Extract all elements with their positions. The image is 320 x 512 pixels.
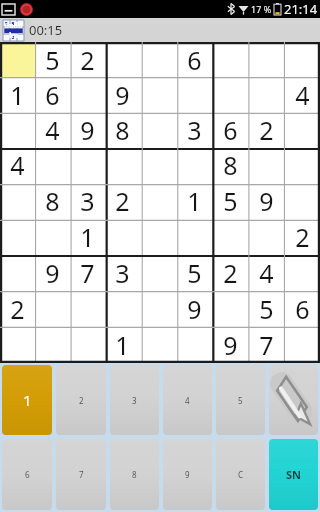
button[interactable]	[105, 42, 140, 77]
button[interactable]: 3	[70, 183, 105, 219]
button[interactable]: 4	[35, 112, 70, 147]
button[interactable]	[0, 183, 35, 219]
button[interactable]	[140, 147, 176, 183]
button[interactable]	[176, 219, 212, 255]
button[interactable]	[0, 42, 35, 77]
button[interactable]: 9	[248, 183, 284, 219]
button[interactable]	[140, 255, 176, 291]
button[interactable]	[0, 112, 35, 147]
button[interactable]	[212, 219, 248, 255]
button[interactable]	[176, 327, 212, 363]
button[interactable]: 6	[212, 112, 248, 147]
button[interactable]	[140, 112, 176, 147]
button[interactable]: 4	[248, 255, 284, 291]
button[interactable]	[0, 327, 35, 363]
button[interactable]: 3	[105, 255, 140, 291]
button[interactable]: 8	[212, 147, 248, 183]
button[interactable]: 5	[35, 42, 70, 77]
button[interactable]: 7	[248, 327, 284, 363]
button[interactable]: 1	[176, 183, 212, 219]
button[interactable]: 6	[2, 439, 52, 510]
button[interactable]: 1	[2, 365, 52, 435]
button[interactable]: 4	[163, 365, 212, 435]
button[interactable]	[212, 77, 248, 112]
button[interactable]	[0, 219, 35, 255]
button[interactable]	[105, 291, 140, 327]
button[interactable]: 9	[163, 439, 212, 510]
button[interactable]	[70, 327, 105, 363]
button[interactable]: 9	[176, 291, 212, 327]
button[interactable]	[70, 77, 105, 112]
button[interactable]: 6	[284, 291, 320, 327]
button[interactable]: 2	[70, 42, 105, 77]
button[interactable]	[284, 42, 320, 77]
button[interactable]: 6	[176, 42, 212, 77]
button[interactable]: 2	[284, 219, 320, 255]
button[interactable]	[140, 77, 176, 112]
button[interactable]	[70, 147, 105, 183]
button[interactable]	[35, 219, 70, 255]
button[interactable]	[176, 77, 212, 112]
button[interactable]	[284, 327, 320, 363]
button[interactable]: 7	[56, 439, 106, 510]
button[interactable]: 9	[70, 112, 105, 147]
button[interactable]: 1	[70, 219, 105, 255]
button[interactable]	[35, 327, 70, 363]
button[interactable]: 2	[212, 255, 248, 291]
button[interactable]: Sudoku	[3, 20, 24, 41]
button[interactable]: 6	[35, 77, 70, 112]
button[interactable]: 1	[0, 77, 35, 112]
button[interactable]	[35, 147, 70, 183]
button[interactable]: 2	[248, 112, 284, 147]
button[interactable]	[248, 42, 284, 77]
button[interactable]	[248, 147, 284, 183]
button[interactable]	[105, 147, 140, 183]
button[interactable]: 9	[35, 255, 70, 291]
staticText: 2	[79, 395, 84, 406]
button[interactable]	[284, 147, 320, 183]
button[interactable]: 3	[176, 112, 212, 147]
button[interactable]	[140, 42, 176, 77]
button[interactable]: 4	[284, 77, 320, 112]
button[interactable]: 9	[212, 327, 248, 363]
button[interactable]: 2	[0, 291, 35, 327]
button[interactable]: 3	[110, 365, 159, 435]
staticText: 5	[238, 395, 243, 406]
staticText: 6	[45, 78, 60, 112]
button[interactable]: 9	[105, 77, 140, 112]
staticText: 2	[259, 113, 274, 147]
button[interactable]: C	[216, 439, 265, 510]
button[interactable]	[105, 219, 140, 255]
button[interactable]: 4	[0, 147, 35, 183]
button[interactable]: 8	[110, 439, 159, 510]
button[interactable]: 1	[105, 327, 140, 363]
button[interactable]	[284, 255, 320, 291]
button[interactable]: 5	[216, 365, 265, 435]
button[interactable]: 5	[212, 183, 248, 219]
button[interactable]: Pencil / notes mode	[269, 365, 318, 435]
button[interactable]	[212, 42, 248, 77]
button[interactable]	[284, 112, 320, 147]
button[interactable]	[35, 291, 70, 327]
button[interactable]	[248, 219, 284, 255]
button[interactable]	[284, 183, 320, 219]
button[interactable]: 8	[35, 183, 70, 219]
staticText: 8	[223, 148, 238, 182]
button[interactable]	[140, 327, 176, 363]
button[interactable]	[212, 291, 248, 327]
button[interactable]	[140, 183, 176, 219]
button[interactable]: 7	[70, 255, 105, 291]
button[interactable]: 8	[105, 112, 140, 147]
button[interactable]: 5	[176, 255, 212, 291]
button[interactable]	[248, 77, 284, 112]
button[interactable]: 5	[248, 291, 284, 327]
button[interactable]	[140, 219, 176, 255]
button[interactable]: 2	[56, 365, 106, 435]
button[interactable]: 2	[105, 183, 140, 219]
button[interactable]	[70, 291, 105, 327]
button[interactable]: SN	[269, 439, 318, 510]
button[interactable]	[140, 291, 176, 327]
button[interactable]	[0, 255, 35, 291]
button[interactable]	[176, 147, 212, 183]
staticText: 9	[115, 78, 130, 112]
